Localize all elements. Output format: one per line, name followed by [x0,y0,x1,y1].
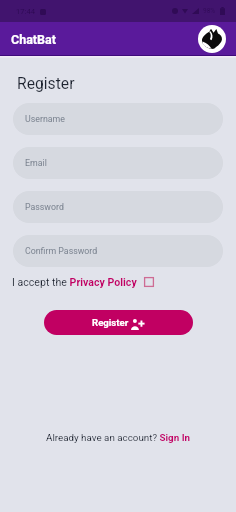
staticText: I accept the Privacy Policy [12,276,137,288]
staticText: Confirm Password [25,246,98,256]
staticText: 98% [203,7,216,15]
button[interactable]: Register [44,310,193,335]
staticText: Already have an account? Sign In [46,432,191,443]
button[interactable]: Email [13,147,223,179]
button[interactable]: Already have an account? Sign In [46,432,191,443]
staticText: Register [92,317,129,328]
button[interactable]: Confirm Password [13,235,223,267]
button[interactable]: Username [13,103,223,135]
staticText: Username [25,114,65,124]
staticText: Register [17,74,75,92]
staticText: Password [25,202,64,212]
button[interactable]: Password [13,191,223,223]
staticText: ChatBat [11,32,56,47]
staticText: 17:44 [16,7,36,16]
button[interactable]: App logo [198,25,226,53]
staticText: Email [25,158,47,168]
button[interactable]: I accept the Privacy Policy [12,275,154,289]
